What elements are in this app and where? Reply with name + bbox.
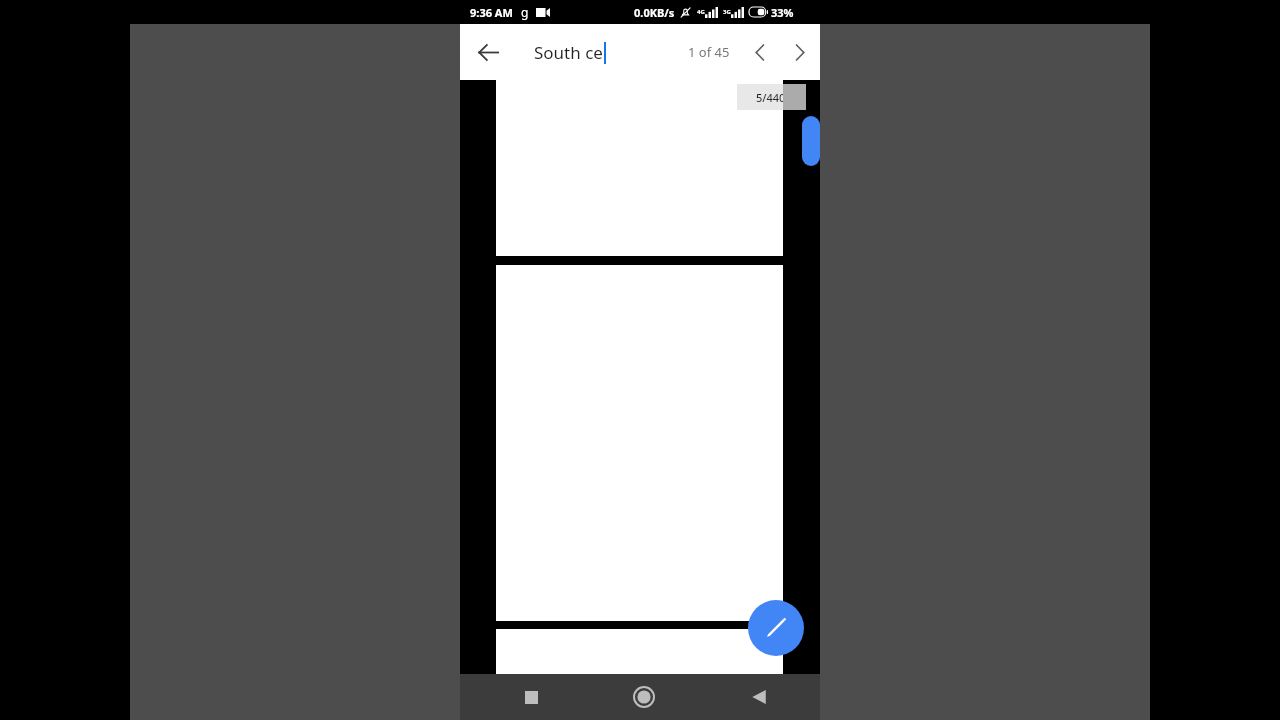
button[interactable] xyxy=(496,265,783,621)
button[interactable] xyxy=(496,629,783,674)
button[interactable]: Next result xyxy=(780,32,820,72)
button[interactable]: Action xyxy=(802,116,820,166)
staticText: 4G xyxy=(697,8,705,16)
button[interactable] xyxy=(496,80,783,256)
staticText: South ce xyxy=(534,41,603,64)
button[interactable]: Back xyxy=(700,674,820,720)
staticText: 3G xyxy=(723,8,731,16)
staticText: 5/440 xyxy=(756,90,786,105)
staticText: 33% xyxy=(771,5,794,20)
staticText: g xyxy=(521,4,529,20)
staticText: 0.0KB/s xyxy=(634,5,675,20)
button[interactable]: Back xyxy=(466,30,510,74)
button[interactable]: Edit xyxy=(748,600,804,656)
button[interactable]: Home xyxy=(580,674,700,720)
button[interactable]: 5/440 xyxy=(737,84,806,110)
button[interactable]: Previous result xyxy=(740,32,780,72)
staticText: 9:36 AM xyxy=(470,5,513,20)
staticText: 1 of 45 xyxy=(688,43,730,61)
button[interactable]: Recent apps xyxy=(460,674,580,720)
